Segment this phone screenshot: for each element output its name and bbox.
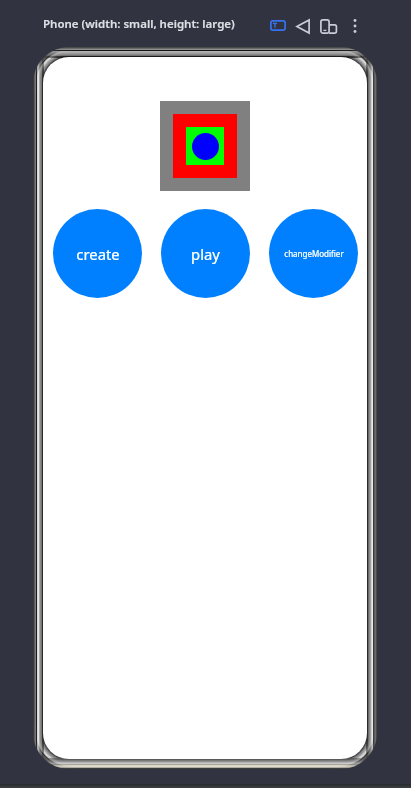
button[interactable]: Interactive mode xyxy=(266,14,290,36)
button[interactable]: More options xyxy=(345,14,365,38)
staticText: play xyxy=(191,244,220,264)
staticText: changeModifier xyxy=(284,248,344,259)
button[interactable]: changeModifier xyxy=(269,209,358,298)
button[interactable]: create xyxy=(53,209,142,298)
button[interactable]: Device settings xyxy=(316,15,340,37)
staticText: Phone (width: small, height: large) xyxy=(43,16,235,32)
button[interactable]: Run preview xyxy=(292,15,314,37)
staticText: create xyxy=(76,244,120,264)
button[interactable]: play xyxy=(161,209,250,298)
button[interactable]: Phone (width: small, height: large) xyxy=(43,16,235,32)
